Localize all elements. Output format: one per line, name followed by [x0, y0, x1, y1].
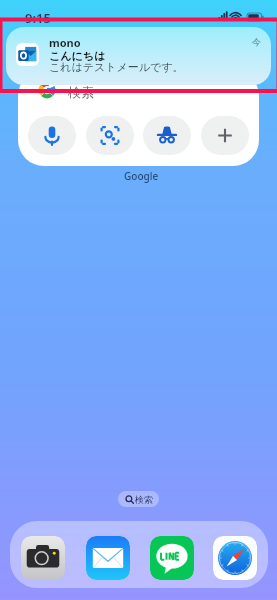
button[interactable]: Incognito search [143, 116, 191, 155]
button[interactable]: Google Lens [86, 116, 134, 155]
staticText: こんにちは [49, 49, 106, 63]
staticText: 検索 [68, 84, 94, 100]
staticText: mono [49, 35, 81, 50]
button[interactable]: Mail [86, 536, 130, 580]
button[interactable]: Camera [21, 536, 65, 580]
staticText: Google [124, 169, 159, 183]
button[interactable]: Safari [213, 536, 257, 580]
button[interactable]: mono [6, 27, 271, 85]
button[interactable]: 検索 [118, 491, 159, 507]
button[interactable]: 検索 [18, 70, 259, 166]
staticText: これはテストメールです。 [49, 60, 184, 74]
staticText: 9:15 [25, 9, 51, 27]
button[interactable]: Add [201, 116, 249, 155]
button[interactable]: LINE [150, 536, 194, 580]
button[interactable]: Voice search [28, 116, 76, 155]
staticText: 今 [252, 36, 261, 47]
staticText: 検索 [135, 494, 153, 505]
